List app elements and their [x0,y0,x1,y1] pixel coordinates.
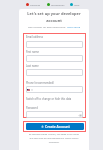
staticText: quickbooks [51,3,65,6]
staticText: One account for everything Intuit. [28,25,67,28]
staticText: Email address [26,35,43,39]
button[interactable]: mint [70,3,80,6]
button[interactable]: turbotax [26,3,41,6]
button[interactable]: Show password [26,111,83,118]
button[interactable]: quickbooks [47,3,65,6]
staticText: First name [26,50,39,54]
button[interactable] [26,55,83,62]
button[interactable]: Create Account [26,123,84,130]
button[interactable] [26,86,83,93]
button[interactable]: Show password [78,113,82,117]
staticText: Switch off to change or hide this data [26,97,72,101]
button[interactable] [26,41,83,48]
button[interactable]: Learn more [67,25,80,28]
staticText: Password [26,106,38,110]
button[interactable] [26,69,83,76]
staticText: Let's set up your developer account [20,11,88,23]
staticText: Phone (recommended) [26,81,54,85]
staticText: Create Account [45,124,70,129]
staticText: Last name [26,64,39,68]
staticText: turbotax [30,3,41,6]
staticText: mint [74,3,80,6]
staticText: By selecting Create Account, you agree t… [19,133,89,144]
